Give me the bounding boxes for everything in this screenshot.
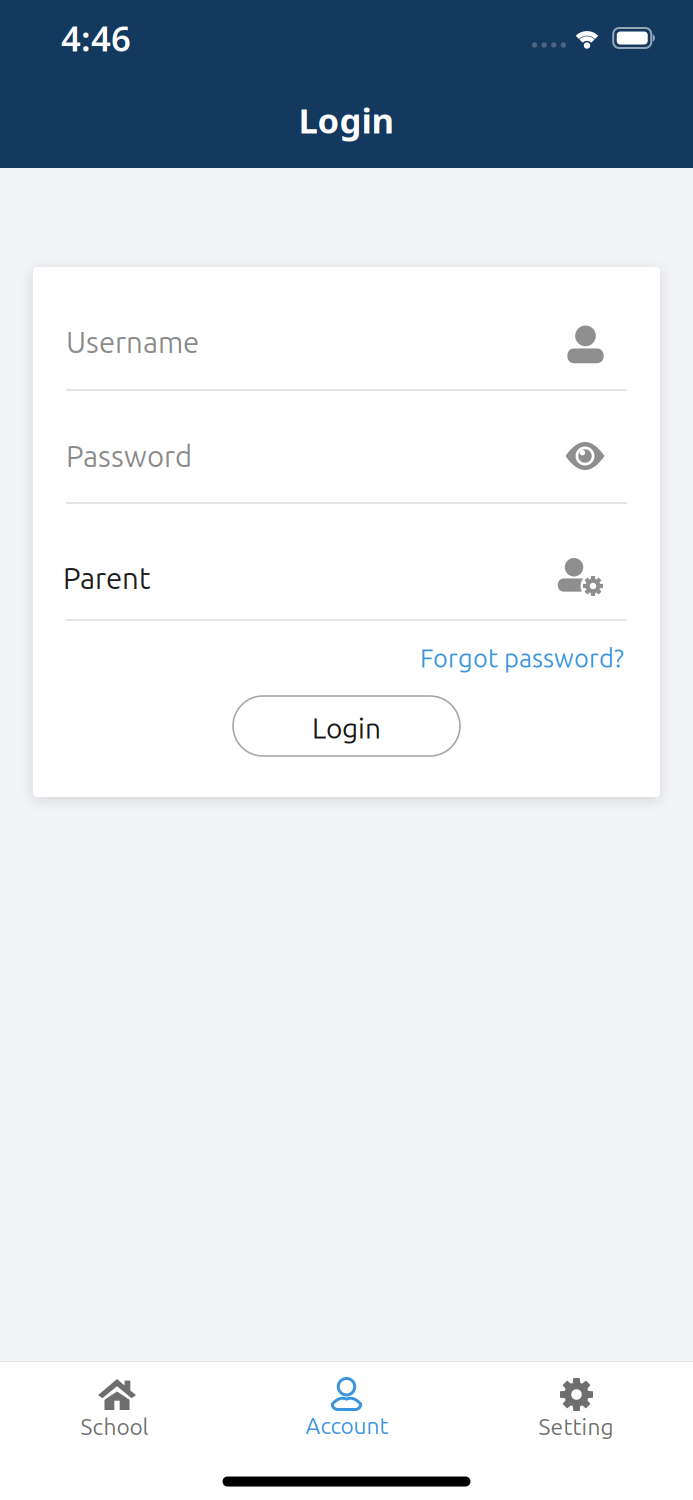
staticText: Account — [305, 1413, 388, 1438]
button[interactable]: Login — [233, 696, 460, 756]
staticText: Setting — [538, 1414, 613, 1439]
staticText: Password — [66, 440, 192, 472]
button[interactable]: Account — [261, 1364, 431, 1454]
staticText: Forgot password? — [420, 644, 624, 672]
staticText: Username — [66, 326, 199, 358]
button[interactable]: Show password — [565, 442, 604, 470]
button[interactable]: School — [32, 1364, 202, 1454]
button[interactable]: Setting — [491, 1364, 661, 1454]
staticText: Login — [312, 712, 381, 744]
staticText: School — [80, 1414, 148, 1439]
button[interactable]: Forgot password? — [344, 644, 624, 672]
staticText: Parent — [63, 562, 151, 594]
staticText: 4:46 — [61, 15, 131, 61]
staticText: Login — [298, 97, 394, 143]
button[interactable]: Parent — [66, 547, 627, 609]
